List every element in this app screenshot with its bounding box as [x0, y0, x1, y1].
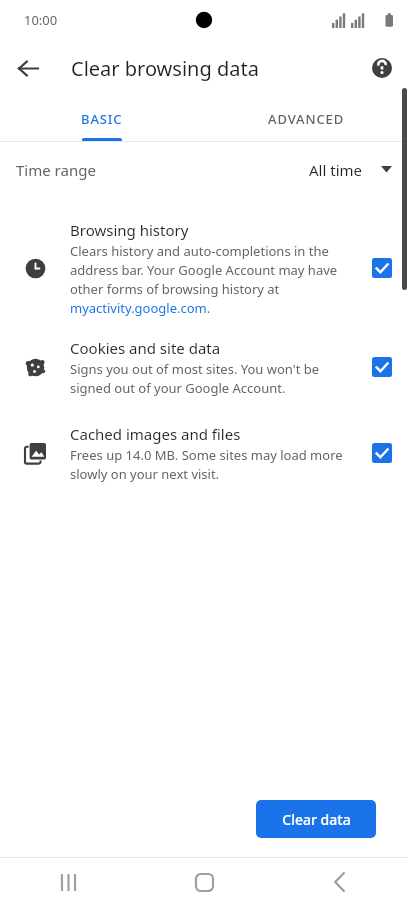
- button[interactable]: Back: [10, 50, 46, 86]
- button[interactable]: Toggle Browsing history: [356, 212, 408, 324]
- staticText: 10:00: [24, 11, 58, 29]
- staticText: Signs you out of most sites. You won't b…: [70, 360, 344, 397]
- button[interactable]: Cached images and files: [0, 410, 408, 496]
- button[interactable]: ADVANCED: [204, 96, 408, 141]
- staticText: Clears history and auto-completions in t…: [70, 242, 344, 317]
- staticText: Cached images and files: [70, 424, 241, 444]
- staticText: Time range: [16, 160, 96, 180]
- button[interactable]: Browsing history: [0, 212, 408, 324]
- button[interactable]: Back: [272, 858, 408, 906]
- staticText: Clear browsing data: [71, 55, 259, 82]
- button[interactable]: Clear data: [256, 800, 376, 838]
- button[interactable]: BASIC: [0, 96, 204, 141]
- button[interactable]: Toggle Cached images and files: [356, 410, 408, 496]
- staticText: BASIC: [81, 110, 123, 128]
- button[interactable]: Cookies and site data: [0, 324, 408, 410]
- button[interactable]: Toggle Cookies and site data: [356, 324, 408, 410]
- button[interactable]: Recent apps: [0, 858, 136, 906]
- staticText: ADVANCED: [268, 110, 345, 128]
- button[interactable]: Help: [364, 50, 400, 86]
- staticText: Frees up 14.0 MB. Some sites may load mo…: [70, 446, 344, 483]
- staticText: All time: [309, 160, 362, 180]
- staticText: Browsing history: [70, 220, 189, 240]
- staticText: Cookies and site data: [70, 338, 221, 358]
- button[interactable]: Time range: [0, 142, 408, 198]
- button[interactable]: Home: [136, 858, 272, 906]
- staticText: Clear data: [282, 810, 351, 829]
